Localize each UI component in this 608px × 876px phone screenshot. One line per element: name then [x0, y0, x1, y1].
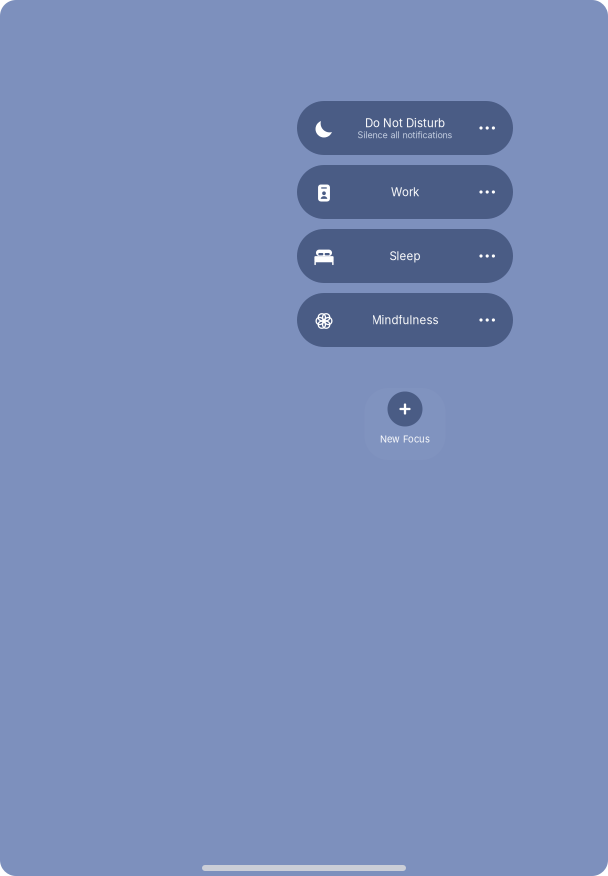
staticText: Silence all notifications [357, 130, 452, 140]
button[interactable]: New Focus [364, 388, 445, 460]
staticText: Work [391, 185, 419, 199]
staticText: New Focus [380, 433, 430, 445]
staticText: Sleep [389, 249, 420, 263]
button[interactable]: Sleep [297, 229, 513, 283]
button[interactable]: Work [297, 165, 513, 219]
staticText: Mindfulness [371, 313, 438, 327]
staticText: Do Not Disturb [365, 116, 445, 130]
button[interactable]: Do Not Disturb [297, 101, 513, 155]
button[interactable]: Mindfulness [297, 293, 513, 347]
